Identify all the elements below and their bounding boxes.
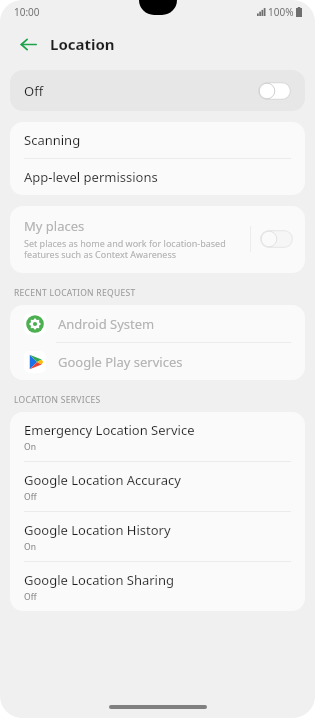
staticText: Google Location Accuracy [24, 471, 181, 489]
staticText: Emergency Location Service [24, 421, 195, 439]
staticText: LOCATION SERVICES [14, 394, 101, 406]
button[interactable]: Back [15, 31, 41, 57]
button[interactable]: Google Play services [10, 343, 305, 380]
staticText: 100% [268, 5, 294, 19]
staticText: Location [50, 34, 115, 54]
staticText: Off [24, 591, 37, 603]
button[interactable]: Google Location Sharing [10, 562, 305, 611]
button[interactable]: Google Location Accuracy [10, 462, 305, 511]
staticText: On [24, 441, 36, 453]
staticText: Android System [58, 315, 155, 333]
staticText: On [24, 541, 36, 553]
staticText: App-level permissions [24, 168, 158, 186]
staticText: Scanning [24, 131, 81, 149]
button[interactable]: App-level permissions [10, 159, 305, 195]
staticText: Google Location Sharing [24, 571, 175, 589]
staticText: Set places as home and work for location… [24, 237, 242, 261]
staticText: Google Location History [24, 521, 171, 539]
button[interactable]: Google Location History [10, 512, 305, 561]
button[interactable]: Off [10, 70, 305, 111]
staticText: Google Play services [58, 353, 183, 371]
button[interactable]: Emergency Location Service [10, 412, 305, 461]
button[interactable]: My places [10, 206, 305, 273]
staticText: My places [24, 217, 85, 235]
staticText: Off [24, 491, 37, 503]
staticText: RECENT LOCATION REQUEST [14, 287, 136, 299]
button[interactable]: Scanning [10, 122, 305, 158]
staticText: Off [24, 82, 258, 100]
staticText: 10:00 [14, 5, 40, 19]
button[interactable]: Android System [10, 305, 305, 342]
